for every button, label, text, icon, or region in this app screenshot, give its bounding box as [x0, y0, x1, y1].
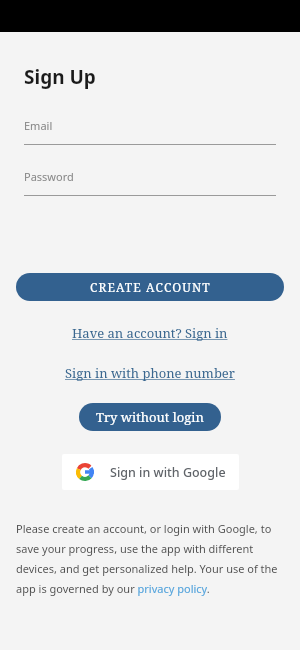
- staticText: CREATE ACCOUNT: [90, 279, 211, 295]
- other: Google logo: [76, 463, 94, 481]
- button[interactable]: Have an account? Sign in: [68, 322, 232, 344]
- staticText: Email: [24, 118, 53, 133]
- staticText: Have an account? Sign in: [72, 324, 228, 342]
- button[interactable]: Try without login: [79, 403, 221, 431]
- staticText: Please create an account, or login with …: [16, 521, 284, 596]
- button[interactable]: Email: [24, 118, 276, 145]
- button[interactable]: Password: [24, 169, 276, 196]
- button[interactable]: Google logo: [62, 454, 239, 490]
- staticText: Sign in with Google: [110, 464, 226, 481]
- staticText: Try without login: [96, 408, 204, 426]
- staticText: Password: [24, 169, 74, 184]
- button[interactable]: CREATE ACCOUNT: [16, 273, 284, 301]
- staticText: Sign Up: [24, 64, 96, 90]
- button[interactable]: Sign in with phone number: [61, 362, 239, 384]
- staticText: Sign in with phone number: [65, 364, 235, 382]
